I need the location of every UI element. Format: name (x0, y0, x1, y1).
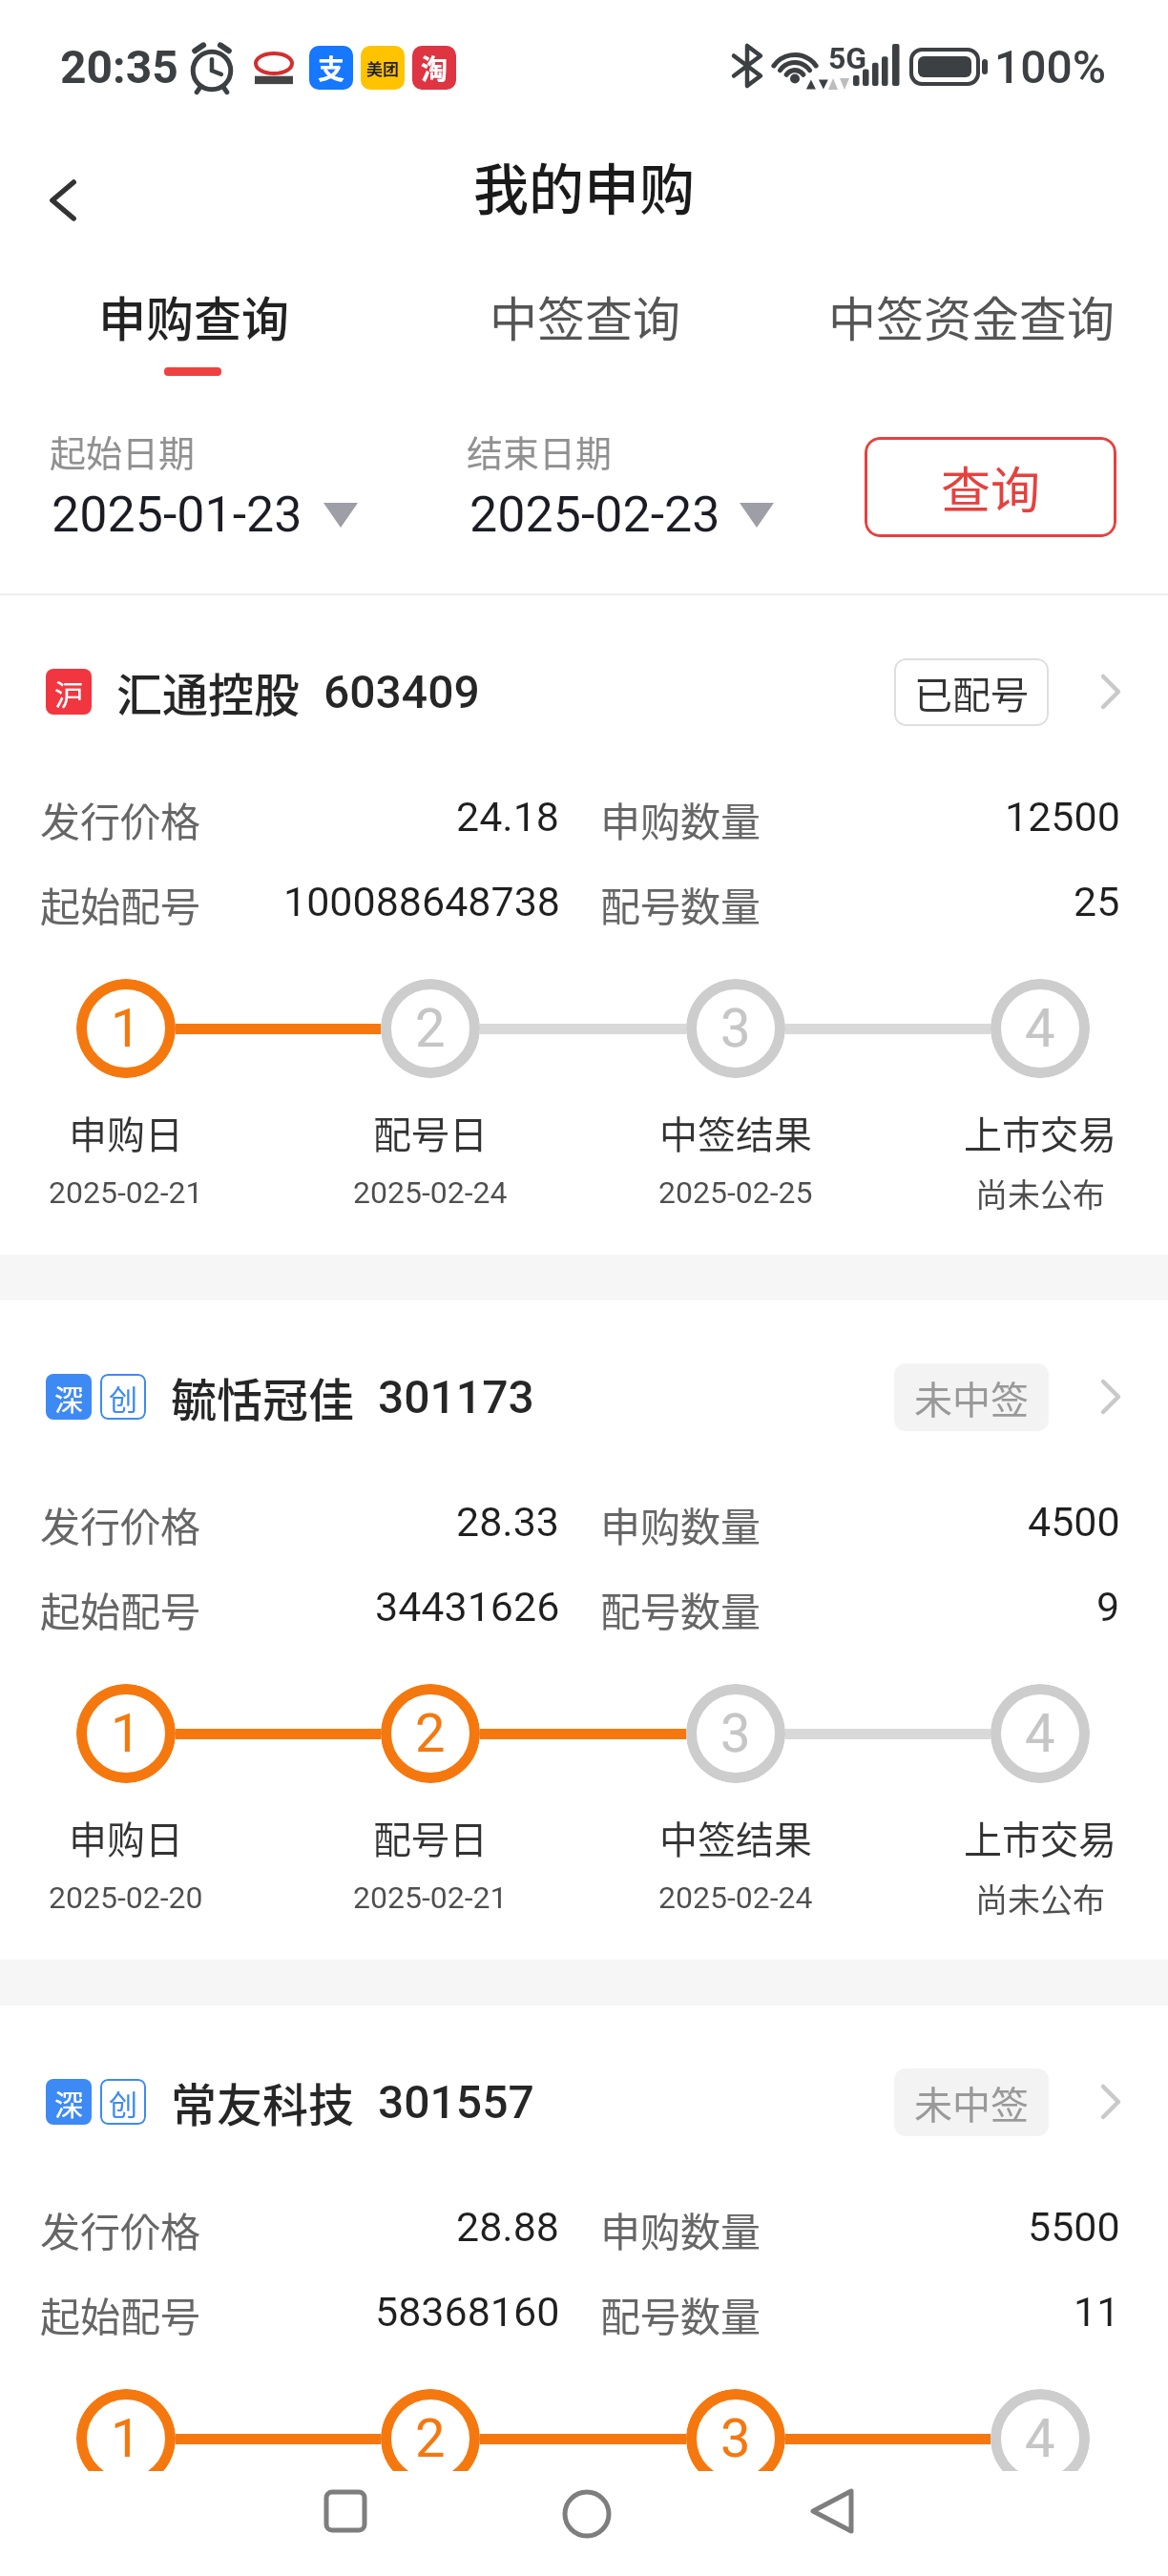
staticText: 28.33 (456, 1498, 560, 1546)
staticText: 2025-02-24 (658, 1880, 813, 1916)
staticText: 中签资金查询 (828, 281, 1115, 348)
staticText: 常友科技 (171, 2068, 355, 2135)
staticText: 301173 (378, 1370, 534, 1423)
staticText: 配号数量 (600, 1580, 761, 1633)
staticText: 3 (720, 2407, 751, 2470)
staticText: 配号日 (373, 1105, 488, 1160)
staticText: 淘 (421, 49, 448, 88)
button[interactable]: 查询 (865, 437, 1116, 537)
staticText: 起始配号 (40, 1580, 201, 1633)
staticText: 申购数量 (600, 790, 761, 843)
staticText: 2025-02-23 (469, 486, 720, 544)
staticText: 4 (1025, 997, 1055, 1060)
staticText: 2025-02-21 (49, 1174, 203, 1211)
staticText: 配号数量 (600, 875, 761, 928)
button[interactable]: 中签资金查询 (819, 281, 1124, 348)
staticText: 配号数量 (600, 2285, 761, 2338)
staticText: 未中签 (914, 2075, 1029, 2130)
staticText: 2025-02-21 (353, 1880, 508, 1916)
button[interactable]: 2025-01-23 (52, 486, 358, 544)
staticText: 查询 (941, 451, 1041, 523)
staticText: 尚未公布 (975, 1170, 1105, 1215)
staticText: 301557 (378, 2075, 534, 2129)
staticText: 1 (111, 2407, 141, 2470)
staticText: 2 (415, 997, 446, 1060)
staticText: 4 (1025, 2407, 1055, 2470)
staticText: 中签结果 (659, 1105, 812, 1160)
staticText: 上市交易 (964, 1105, 1116, 1160)
staticText: 20:35 (60, 40, 178, 93)
staticText: 100088648738 (283, 878, 560, 925)
button[interactable]: 2025-02-23 (469, 486, 774, 544)
staticText: 未中签 (914, 1370, 1029, 1425)
button[interactable]: 中签查询 (432, 281, 738, 348)
button[interactable]: 申购查询 (41, 281, 346, 348)
staticText: 起始配号 (40, 2285, 201, 2338)
staticText: 发行价格 (40, 790, 201, 843)
staticText: 2025-02-20 (49, 1880, 203, 1916)
staticText: 深 (54, 2082, 83, 2123)
staticText: 5G (828, 40, 867, 76)
staticText: 深 (54, 1377, 83, 1418)
staticText: 4 (1025, 1702, 1055, 1765)
button[interactable]: 深 (46, 1362, 1120, 1431)
staticText: 603409 (323, 665, 480, 718)
staticText: 24.18 (456, 793, 560, 841)
staticText: 申购查询 (98, 281, 289, 348)
staticText: 起始配号 (40, 875, 201, 928)
staticText: 2025-02-25 (658, 1174, 813, 1211)
staticText: 3 (720, 1702, 751, 1765)
staticText: 11 (1074, 2288, 1120, 2336)
staticText: 申购日 (69, 1105, 183, 1160)
staticText: 配号日 (373, 1810, 488, 1865)
staticText: 尚未公布 (975, 1875, 1105, 1921)
staticText: 中签结果 (659, 1810, 812, 1865)
staticText: 创 (109, 1377, 137, 1418)
button[interactable] (324, 2490, 366, 2532)
staticText: 9 (1096, 1583, 1120, 1631)
staticText: 中签查询 (490, 281, 680, 348)
staticText: 汇通控股 (116, 658, 301, 725)
button[interactable] (34, 172, 92, 229)
staticText: 2025-02-24 (353, 1174, 508, 1211)
staticText: 4500 (1028, 1498, 1120, 1546)
staticText: 发行价格 (40, 1495, 201, 1548)
staticText: 我的申购 (473, 146, 696, 226)
staticText: 2 (415, 1702, 446, 1765)
staticText: 2025-01-23 (52, 486, 302, 544)
staticText: 沪 (54, 672, 83, 713)
staticText: 上市交易 (964, 1810, 1116, 1865)
staticText: 12500 (1005, 793, 1120, 841)
staticText: 3 (720, 997, 751, 1060)
staticText: 申购日 (69, 1810, 183, 1865)
staticText: 申购数量 (600, 2200, 761, 2254)
button[interactable]: 沪 (46, 657, 1120, 726)
staticText: 25 (1074, 878, 1120, 925)
staticText: 28.88 (456, 2203, 560, 2251)
staticText: 申购数量 (600, 1495, 761, 1548)
staticText: 100% (994, 40, 1107, 93)
staticText: 34431626 (375, 1583, 560, 1631)
staticText: 发行价格 (40, 2200, 201, 2254)
staticText: 美团 (366, 56, 399, 80)
staticText: 58368160 (375, 2288, 560, 2336)
staticText: 创 (109, 2082, 137, 2123)
staticText: 已配号 (914, 665, 1029, 720)
staticText: 1 (111, 1702, 141, 1765)
staticText: 支 (318, 49, 345, 88)
staticText: 起始日期 (50, 425, 196, 477)
button[interactable] (563, 2490, 611, 2538)
staticText: 2 (415, 2407, 446, 2470)
button[interactable] (810, 2489, 854, 2533)
staticText: 毓恬冠佳 (171, 1363, 355, 1430)
staticText: 5500 (1028, 2203, 1120, 2251)
staticText: 结束日期 (467, 425, 613, 477)
button[interactable]: 深 (46, 2067, 1120, 2136)
staticText: 1 (111, 997, 141, 1060)
